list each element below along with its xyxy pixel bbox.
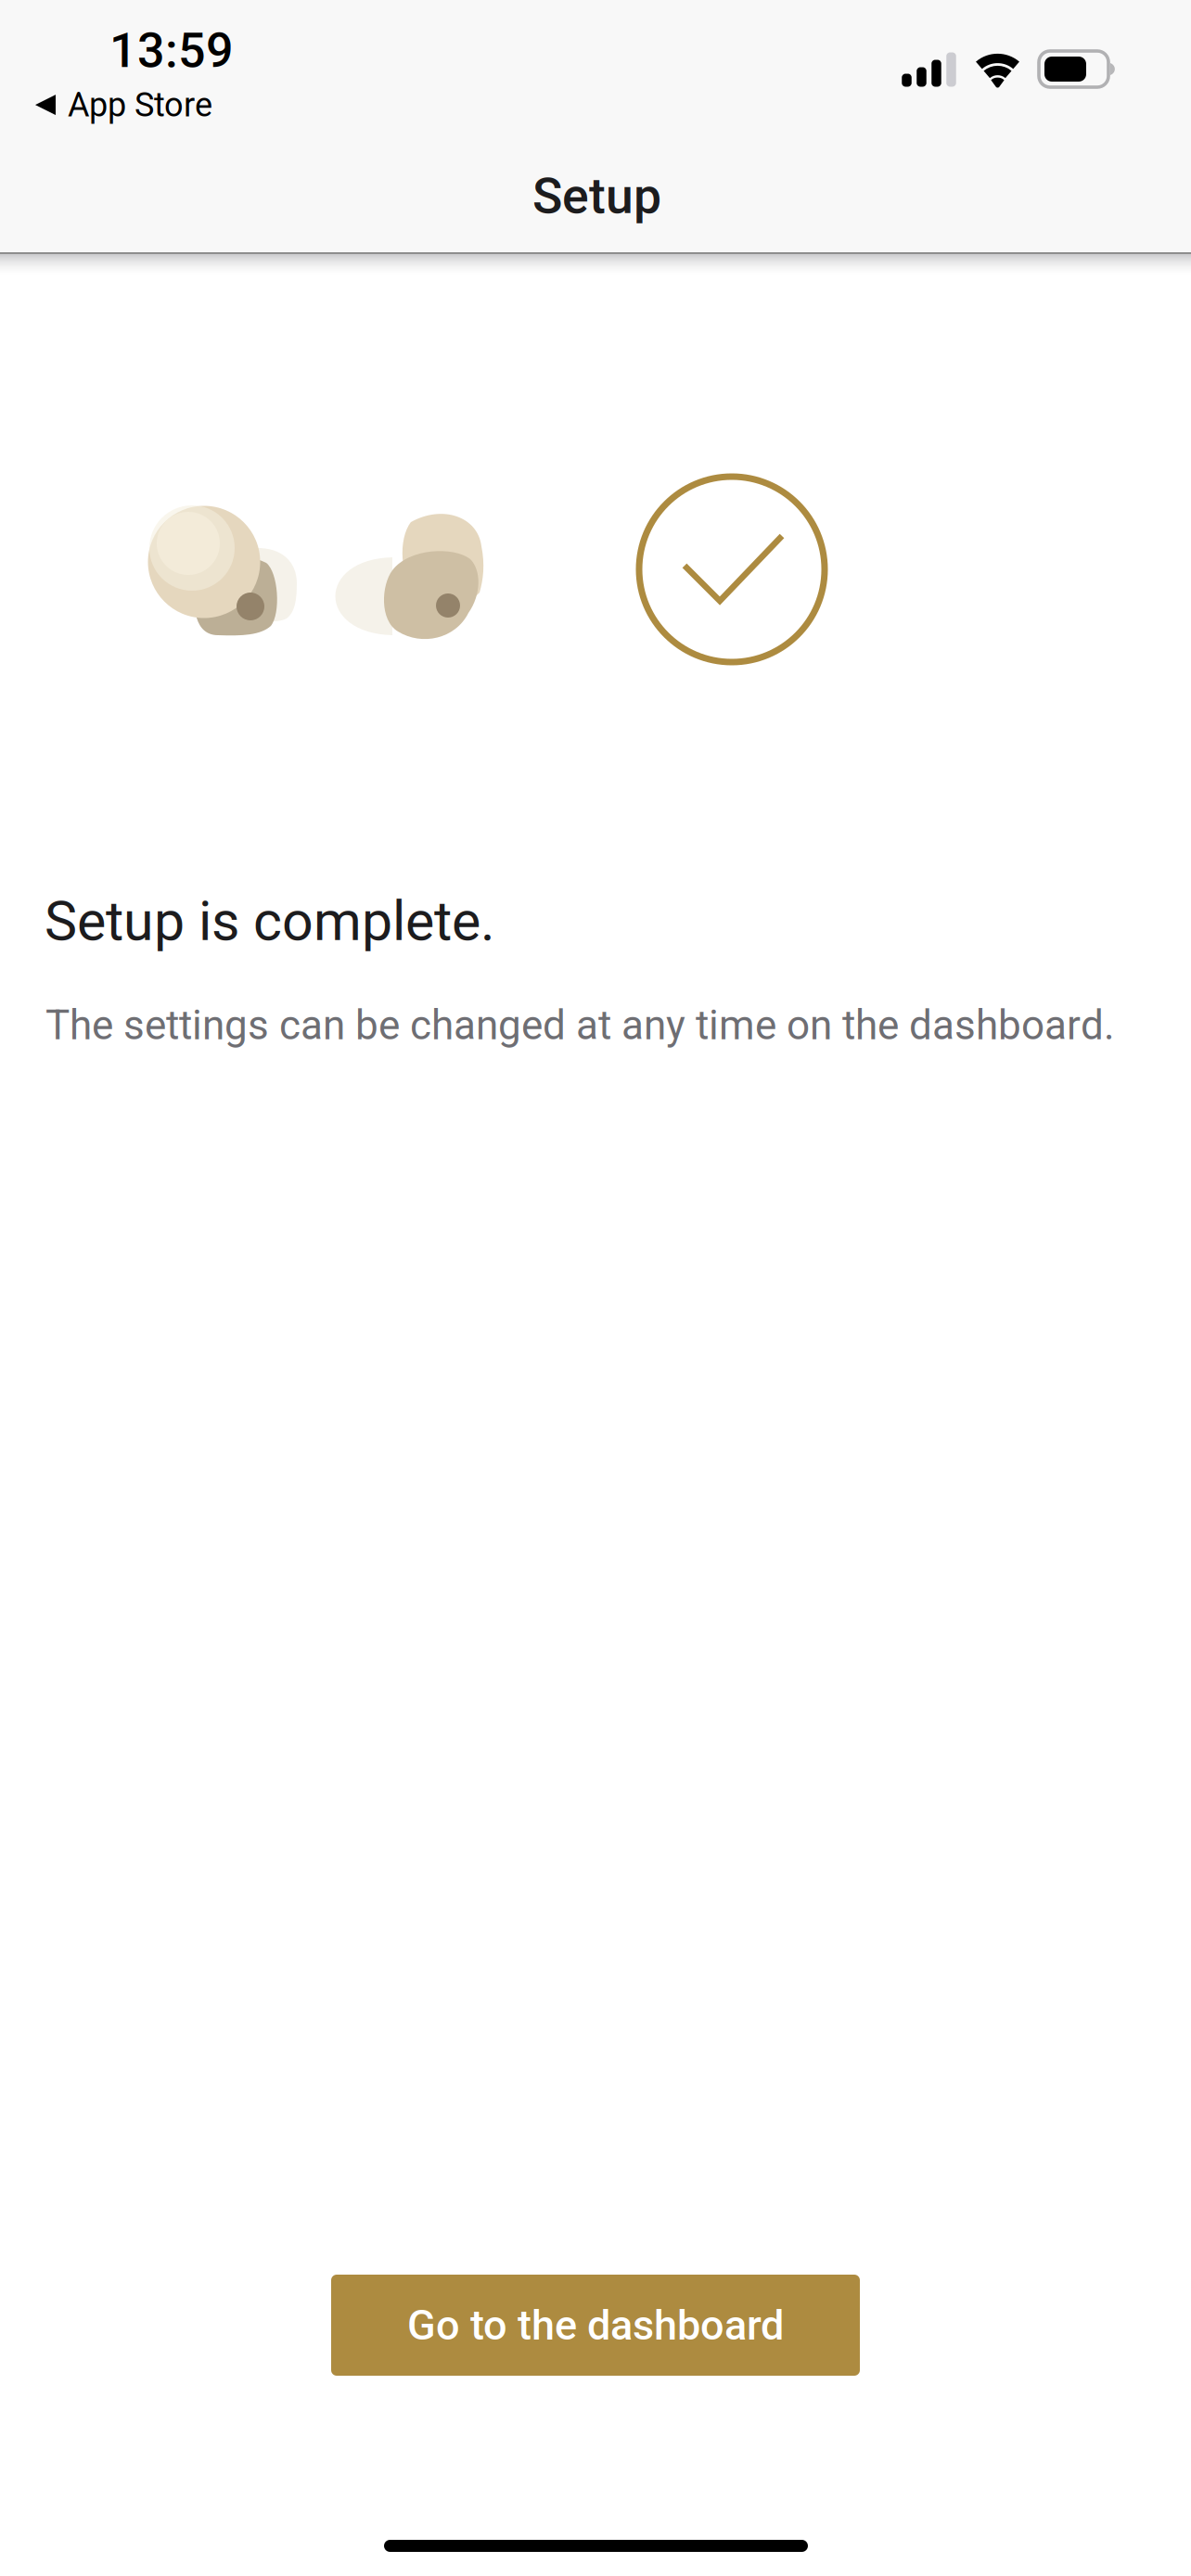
staticText: Setup [532, 167, 661, 225]
button[interactable]: App Store [35, 85, 212, 124]
staticText: Setup is complete. [45, 889, 495, 953]
staticText: Go to the dashboard [407, 2301, 784, 2350]
staticText: App Store [68, 85, 212, 124]
staticText: The settings can be changed at any time … [45, 1001, 1115, 1049]
staticText: 13:59 [109, 22, 234, 79]
button[interactable]: Go to the dashboard [331, 2275, 860, 2376]
